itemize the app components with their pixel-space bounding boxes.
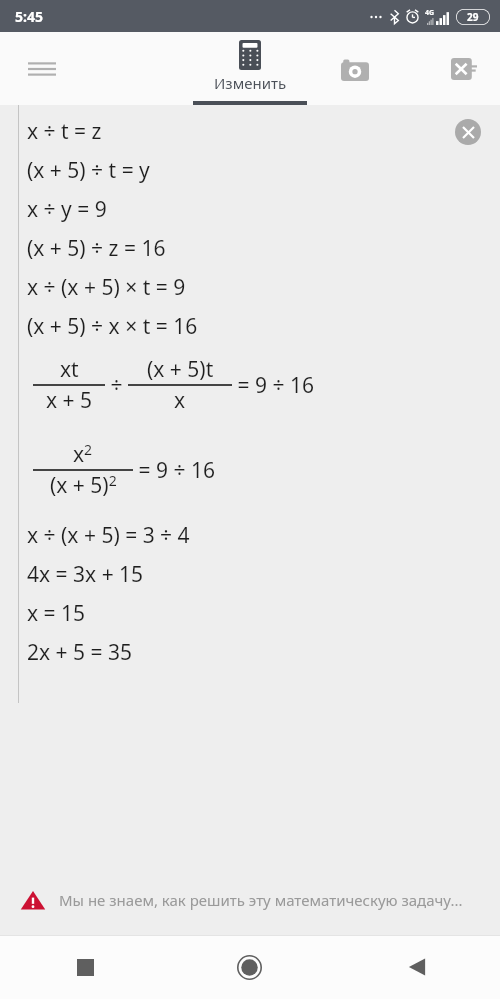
staticText: = 9 ÷ 16 (133, 456, 215, 485)
staticText: x ÷ (x + 5) = 3 ÷ 4 (27, 521, 190, 550)
staticText: (x + 5) ÷ x × t = 16 (27, 312, 198, 341)
staticText: Изменить (214, 73, 287, 93)
staticText: x ÷ y = 9 (27, 195, 107, 224)
staticText: 4x = 3x + 15 (27, 560, 144, 589)
staticText: x2 (73, 440, 93, 469)
staticText: = 9 ÷ 16 (232, 371, 314, 400)
staticText: 5:45 (15, 7, 43, 26)
staticText: x (174, 386, 186, 415)
staticText: xt (60, 355, 79, 384)
staticText: 2x + 5 = 35 (27, 638, 133, 667)
button[interactable]: Recents (0, 935, 166, 999)
button[interactable]: Clear (455, 119, 481, 145)
staticText: (x + 5) ÷ z = 16 (27, 234, 166, 263)
button[interactable]: Back (333, 935, 500, 999)
staticText: 4G (425, 8, 435, 18)
staticText: Мы не знаем, как решить эту математическ… (59, 890, 463, 910)
button[interactable]: Solve for x (440, 45, 488, 93)
staticText: 29 (467, 10, 479, 24)
staticText: x ÷ t = z (27, 117, 102, 146)
button[interactable]: Menu (18, 45, 66, 93)
staticText: x + 5 (46, 386, 93, 415)
staticText: (x + 5) ÷ t = y (27, 156, 150, 185)
button[interactable]: Изменить (190, 32, 310, 105)
button[interactable]: Camera (331, 45, 379, 93)
staticText: (x + 5)t (147, 355, 214, 384)
staticText: x = 15 (27, 599, 86, 628)
button[interactable]: Home (166, 935, 333, 999)
staticText: x ÷ (x + 5) × t = 9 (27, 273, 186, 302)
staticText: (x + 5)2 (50, 471, 117, 500)
staticText: ÷ (105, 371, 128, 400)
